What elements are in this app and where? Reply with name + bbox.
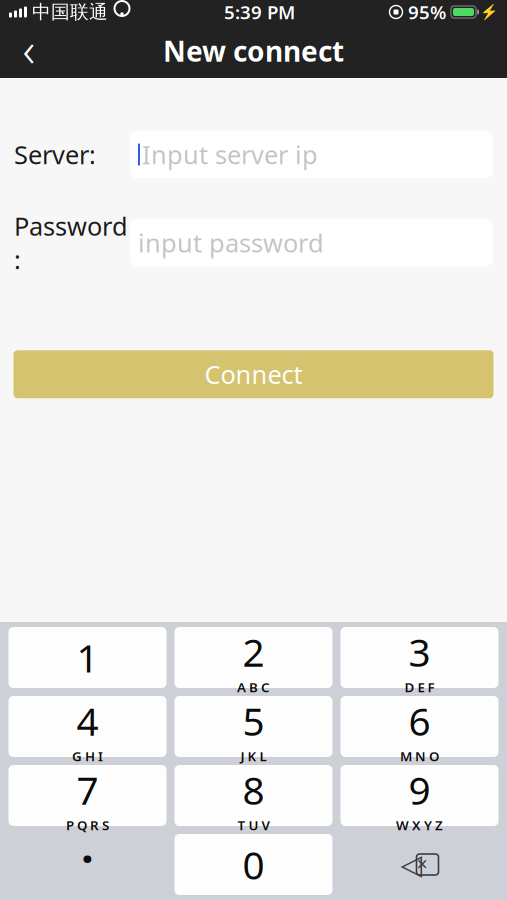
button[interactable]: Input server ip xyxy=(130,131,493,178)
staticText: 8 xyxy=(242,764,264,815)
staticText: ✕ xyxy=(416,856,428,873)
staticText: 7 xyxy=(76,764,98,815)
button[interactable]: Connect xyxy=(13,350,493,398)
button[interactable]: 0 xyxy=(174,834,332,895)
button[interactable]: Back xyxy=(0,25,58,77)
staticText: ⚡ xyxy=(480,4,498,20)
button[interactable]: Decimal point xyxy=(8,834,166,895)
staticText: · xyxy=(81,827,94,888)
staticText: 9 xyxy=(408,764,430,815)
button[interactable]: 5 xyxy=(174,696,332,757)
staticText: J K L xyxy=(240,747,266,765)
staticText: 5:39 PM xyxy=(224,0,295,24)
staticText: Password: xyxy=(14,209,128,276)
staticText: Connect xyxy=(204,357,302,391)
button[interactable]: 8 xyxy=(174,765,332,826)
staticText: 4 xyxy=(76,695,98,746)
staticText: 6 xyxy=(408,695,430,746)
button[interactable]: 9 xyxy=(340,765,498,826)
staticText: G H I xyxy=(72,747,103,765)
staticText: 95% xyxy=(408,0,446,24)
staticText: 1 xyxy=(76,632,98,683)
staticText: input password xyxy=(138,226,324,259)
button[interactable]: 7 xyxy=(8,765,166,826)
staticText: 中国联通 xyxy=(32,0,108,23)
staticText: 0 xyxy=(242,839,264,890)
staticText: Server: xyxy=(14,138,96,171)
staticText: P Q R S xyxy=(66,816,109,834)
staticText: W X Y Z xyxy=(396,816,443,834)
button[interactable]: 1 xyxy=(8,627,166,688)
staticText: T U V xyxy=(237,816,269,834)
button[interactable]: 6 xyxy=(340,696,498,757)
staticText: 3 xyxy=(408,626,430,677)
staticText: M N O xyxy=(400,747,439,765)
staticText: ‹ xyxy=(22,17,35,80)
staticText: New connect xyxy=(163,32,344,70)
button[interactable]: 3 xyxy=(340,627,498,688)
button[interactable]: 4 xyxy=(8,696,166,757)
button[interactable]: Delete xyxy=(340,834,498,895)
staticText: A B C xyxy=(237,678,270,696)
staticText: 5 xyxy=(242,695,264,746)
button[interactable]: 2 xyxy=(174,627,332,688)
staticText: 2 xyxy=(242,626,264,677)
staticText: D E F xyxy=(404,678,434,696)
staticText: Input server ip xyxy=(142,138,318,171)
staticText: ◁ xyxy=(400,849,422,880)
button[interactable]: input password xyxy=(130,219,493,266)
